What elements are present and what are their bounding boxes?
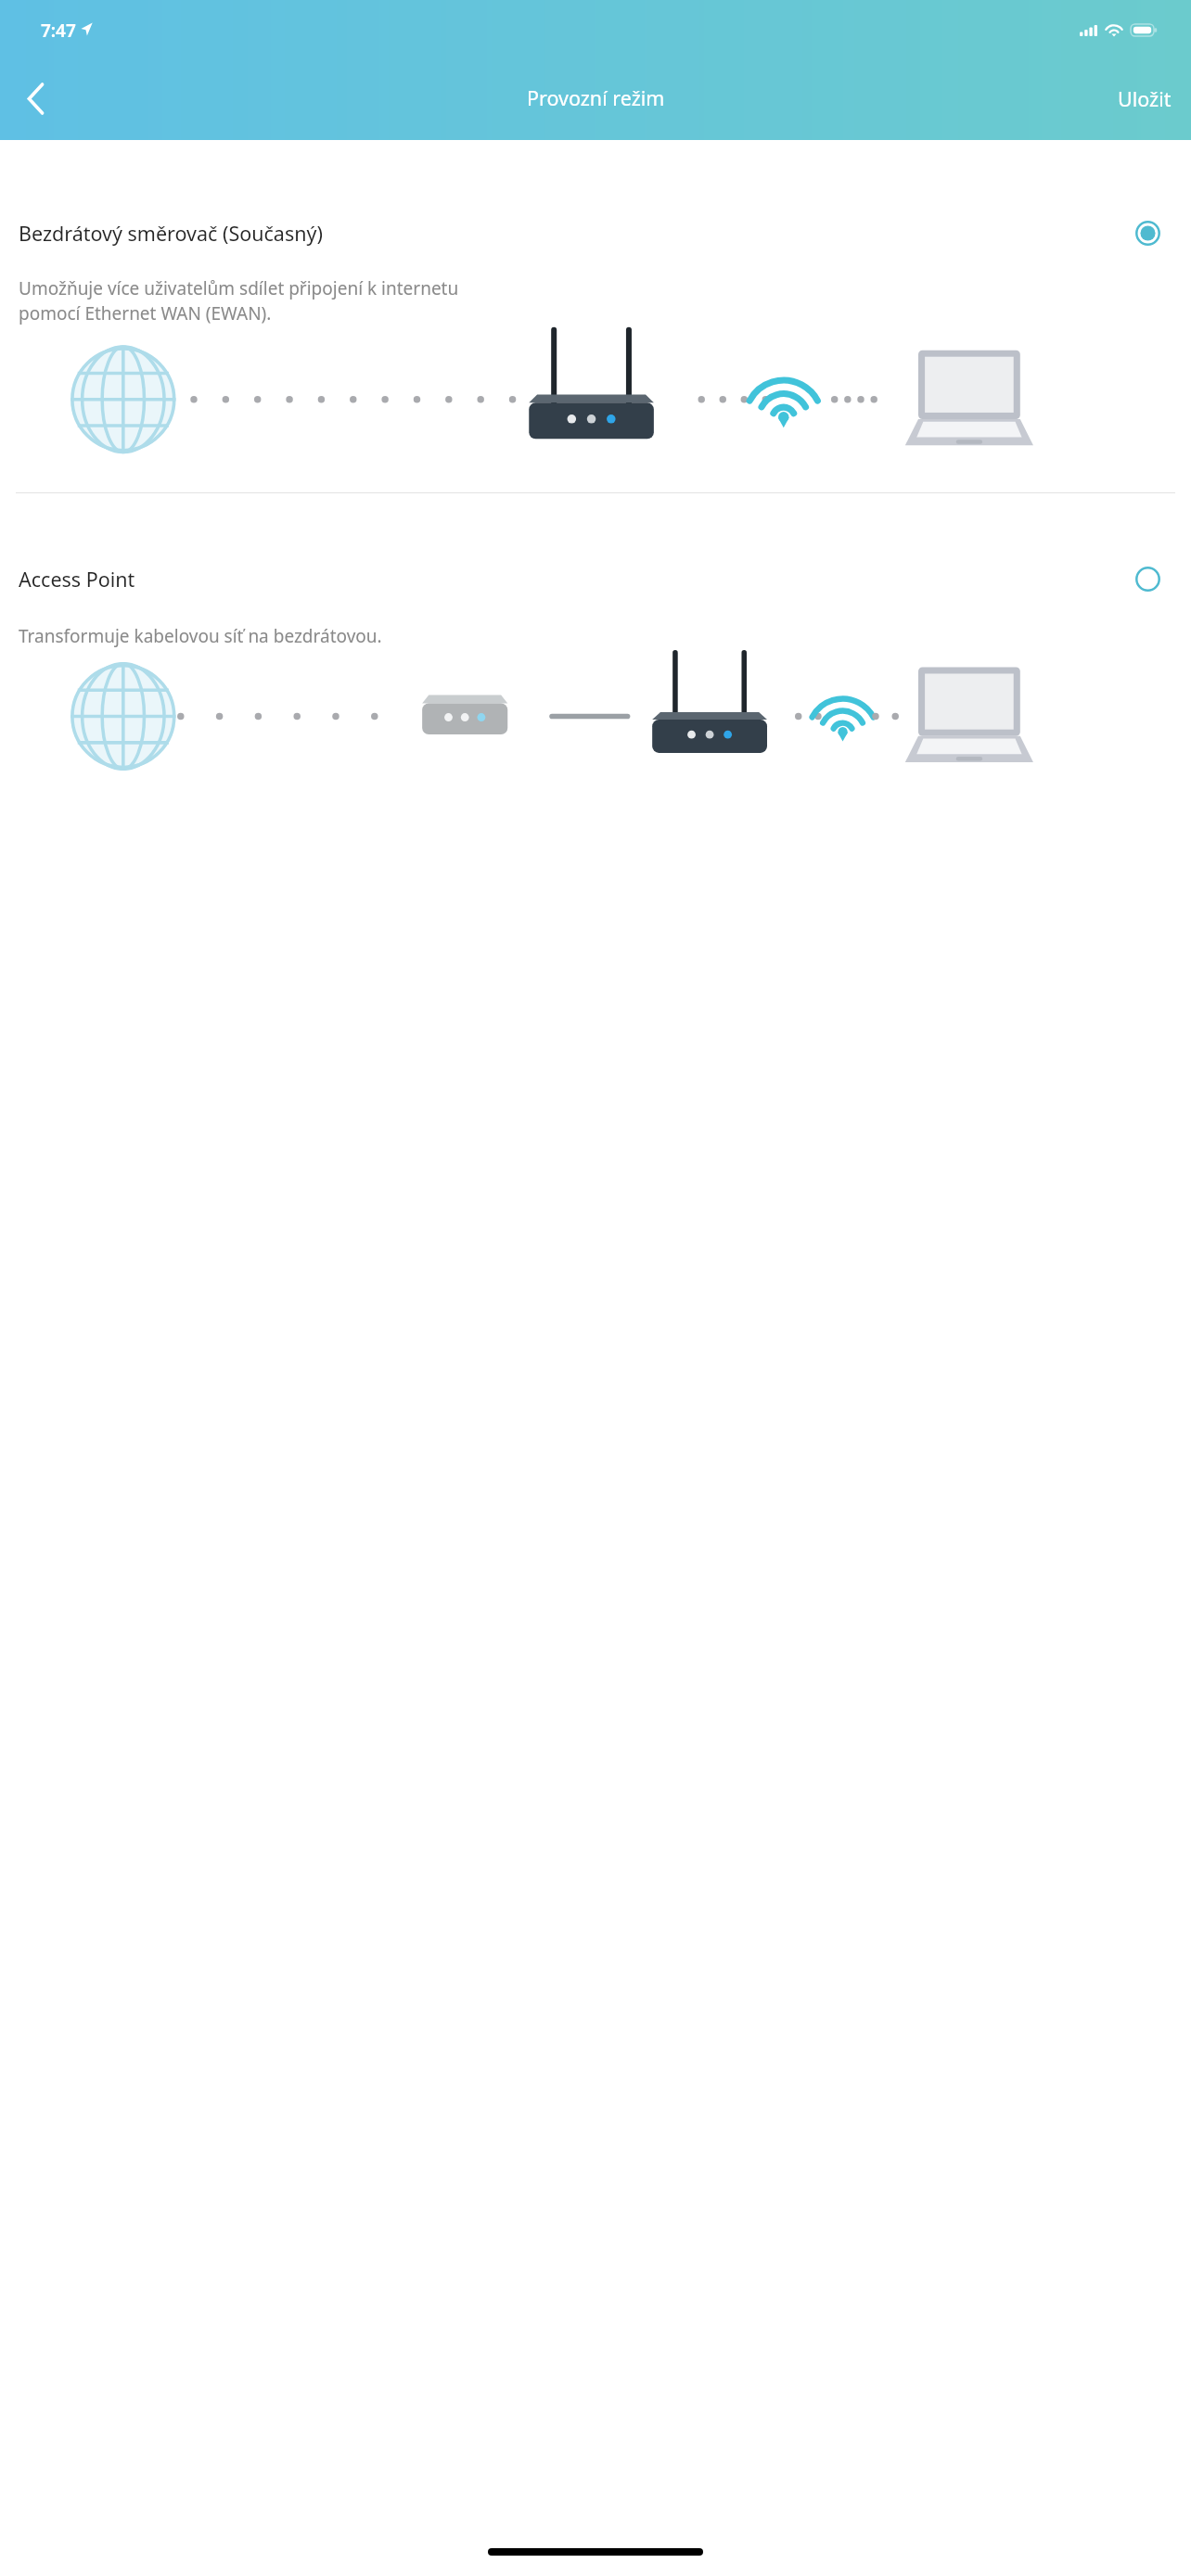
staticText: Uložit [1118, 85, 1172, 112]
button[interactable]: Uložit [1098, 57, 1191, 140]
staticText: Access Point [19, 566, 1135, 593]
staticText: Umožňuje více uživatelům sdílet připojen… [19, 276, 459, 325]
button[interactable]: Back [0, 57, 70, 140]
staticText: Provozní režim [527, 84, 665, 111]
staticText: Bezdrátový směrovač (Současný) [19, 220, 1135, 247]
button[interactable]: Access Point [0, 493, 1191, 754]
staticText: Transformuje kabelovou síť na bezdrátovo… [19, 624, 382, 648]
staticText: 7:47 [41, 19, 76, 43]
button[interactable]: Bezdrátový směrovač (Současný) [0, 140, 1191, 492]
